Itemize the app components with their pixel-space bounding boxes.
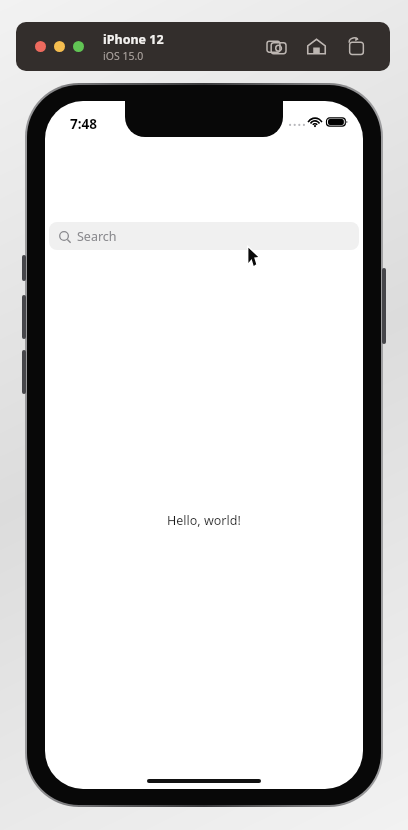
button[interactable]: Power — [382, 268, 386, 344]
staticText: 7:48 — [70, 115, 97, 133]
button[interactable]: Volume up — [22, 295, 26, 339]
staticText: Search — [77, 228, 117, 245]
button[interactable]: Minimise — [54, 41, 65, 52]
button[interactable]: Screenshot — [265, 35, 288, 58]
button[interactable]: Rotate — [345, 35, 368, 58]
button[interactable]: Silent switch — [22, 255, 26, 281]
staticText: Hello, world! — [167, 512, 241, 529]
staticText: iPhone 12 — [103, 31, 164, 48]
button[interactable]: Home — [305, 35, 328, 58]
button[interactable]: Zoom — [73, 41, 84, 52]
staticText: iOS 15.0 — [103, 49, 144, 63]
button[interactable]: Search — [49, 222, 359, 250]
button[interactable]: Volume down — [22, 350, 26, 394]
button[interactable]: Close — [35, 41, 46, 52]
